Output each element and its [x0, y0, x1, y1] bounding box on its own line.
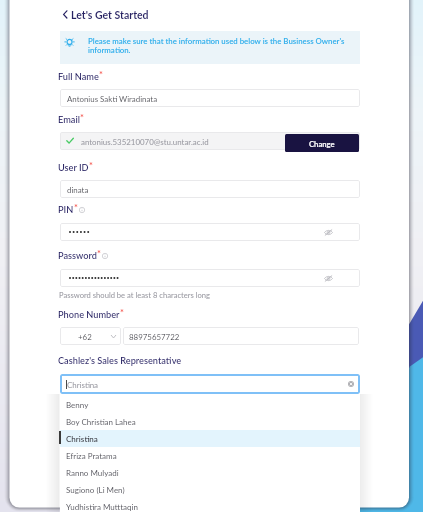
- staticText: *: [74, 202, 78, 213]
- button[interactable]: dinata: [60, 180, 360, 198]
- staticText: Cashlez's Sales Representative: [58, 355, 182, 366]
- staticText: Boy Christian Lahea: [66, 417, 136, 427]
- staticText: Yudhistira Mutttaqin: [66, 502, 138, 512]
- staticText: Change: [309, 139, 335, 148]
- staticText: information.: [88, 45, 131, 54]
- button[interactable]: 88975657722: [123, 327, 359, 345]
- other: Show password: [324, 275, 333, 282]
- button[interactable]: Antonius Sakti Wiradinata: [60, 89, 360, 107]
- button[interactable]: Efriza Pratama: [60, 447, 360, 464]
- other: Show password: [324, 229, 333, 236]
- button[interactable]: Back: [61, 9, 149, 22]
- staticText: Password: [58, 250, 97, 261]
- staticText: Christina: [66, 434, 98, 444]
- other: Back: [61, 9, 71, 22]
- button[interactable]: Ranno Mulyadi: [60, 464, 360, 481]
- button[interactable]: +62: [60, 327, 121, 345]
- button[interactable]: Yudhistira Mutttaqin: [60, 498, 360, 512]
- button[interactable]: Sugiono (Li Men): [60, 481, 360, 498]
- staticText: Full Name: [58, 71, 99, 82]
- staticText: Efriza Pratama: [66, 451, 117, 461]
- staticText: antonius.535210070@stu.untar.ac.id: [81, 137, 209, 146]
- button[interactable]: Benny: [60, 396, 360, 413]
- button[interactable]: Show password: [60, 223, 360, 241]
- staticText: *: [99, 69, 103, 80]
- staticText: 88975657722: [129, 332, 180, 341]
- staticText: *: [97, 248, 101, 259]
- button[interactable]: Change: [285, 134, 359, 152]
- staticText: *: [89, 160, 93, 171]
- staticText: Phone Number: [58, 309, 120, 320]
- staticText: Ranno Mulyadi: [66, 468, 119, 478]
- staticText: Email: [58, 114, 80, 125]
- button[interactable]: Show password: [60, 269, 360, 287]
- staticText: *: [120, 307, 124, 318]
- staticText: Password should be at least 8 characters…: [59, 290, 211, 299]
- staticText: +62: [78, 332, 92, 341]
- staticText: Sugiono (Li Men): [66, 485, 125, 495]
- staticText: *: [80, 112, 84, 123]
- staticText: Let's Get Started: [71, 9, 149, 22]
- button[interactable]: antonius.535210070@stu.untar.ac.id: [60, 132, 360, 150]
- button[interactable]: Christina: [60, 430, 360, 447]
- staticText: Please make sure that the information us…: [88, 36, 345, 45]
- staticText: User ID: [58, 162, 89, 173]
- button[interactable]: Boy Christian Lahea: [60, 413, 360, 430]
- staticText: Christina: [67, 380, 99, 389]
- staticText: Benny: [66, 400, 89, 410]
- staticText: PIN: [58, 204, 74, 215]
- button[interactable]: Christina: [60, 374, 360, 394]
- staticText: Antonius Sakti Wiradinata: [67, 94, 158, 103]
- staticText: dinata: [67, 185, 89, 194]
